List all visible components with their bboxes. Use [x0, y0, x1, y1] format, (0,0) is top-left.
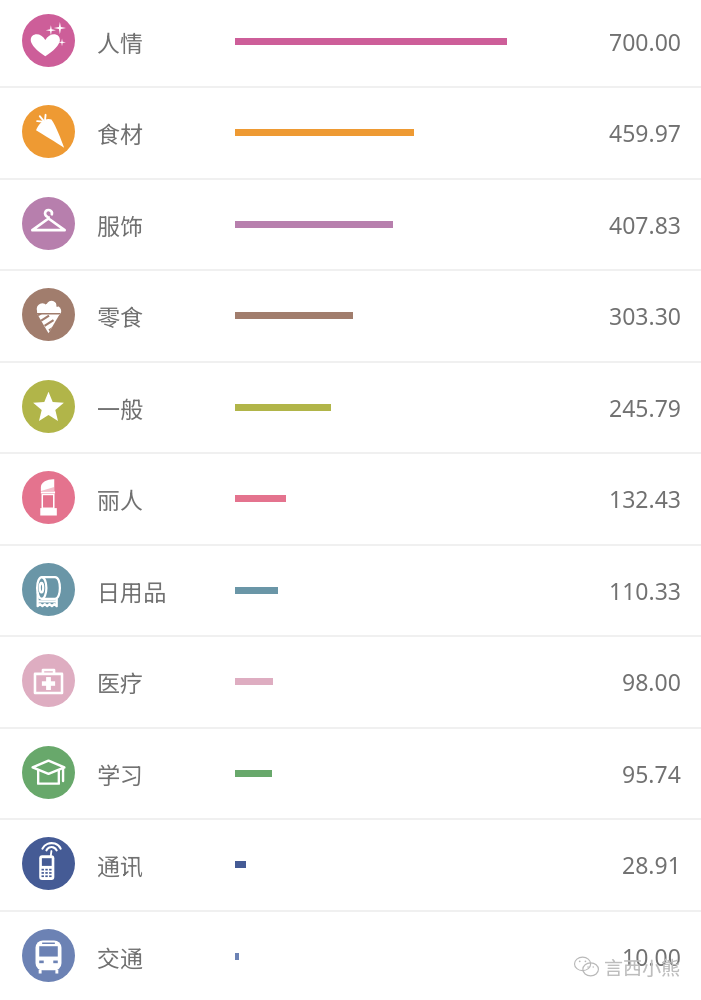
other: 服饰 [22, 197, 75, 250]
staticText: 98.00 [622, 666, 681, 697]
staticText: 丽人 [97, 482, 143, 515]
staticText: 一般 [97, 391, 143, 424]
other: 一般 [22, 380, 75, 433]
staticText: 交通 [97, 940, 143, 973]
button[interactable]: 日用品 [0, 544, 701, 636]
staticText: 零食 [97, 299, 143, 332]
other: 医疗 [22, 654, 75, 707]
other: 人情 [22, 14, 75, 67]
button[interactable]: 医疗 [0, 635, 701, 727]
staticText: 28.91 [622, 849, 681, 880]
other: 食材 [22, 105, 75, 158]
button[interactable]: 零食 [0, 269, 701, 361]
other: 零食 [22, 288, 75, 341]
button[interactable]: 食材 [0, 86, 701, 178]
button[interactable]: 人情 [0, 0, 701, 87]
button[interactable]: 交通 [0, 910, 701, 1000]
button[interactable]: 一般 [0, 361, 701, 453]
button[interactable]: 通讯 [0, 818, 701, 910]
staticText: 407.83 [609, 209, 681, 240]
other: 丽人 [22, 471, 75, 524]
staticText: 学习 [97, 757, 143, 790]
other: 交通 [22, 929, 75, 982]
button[interactable]: 服饰 [0, 178, 701, 270]
staticText: 303.30 [609, 300, 681, 331]
staticText: 245.79 [609, 392, 681, 423]
staticText: 459.97 [609, 117, 681, 148]
other: WeChat [574, 954, 600, 980]
staticText: 95.74 [622, 758, 681, 789]
staticText: 服饰 [97, 208, 143, 241]
staticText: 人情 [97, 25, 143, 58]
staticText: 通讯 [97, 848, 143, 881]
button[interactable]: 丽人 [0, 452, 701, 544]
staticText: 医疗 [97, 665, 143, 698]
staticText: 言西小熊 [604, 953, 681, 981]
staticText: 132.43 [609, 483, 681, 514]
other: 通讯 [22, 837, 75, 890]
staticText: 10.00 [622, 941, 681, 972]
staticText: 110.33 [609, 575, 681, 606]
other: 日用品 [22, 563, 75, 616]
staticText: 食材 [97, 116, 143, 149]
other: 学习 [22, 746, 75, 799]
staticText: 700.00 [609, 26, 681, 57]
staticText: 日用品 [97, 574, 166, 607]
button[interactable]: 学习 [0, 727, 701, 819]
